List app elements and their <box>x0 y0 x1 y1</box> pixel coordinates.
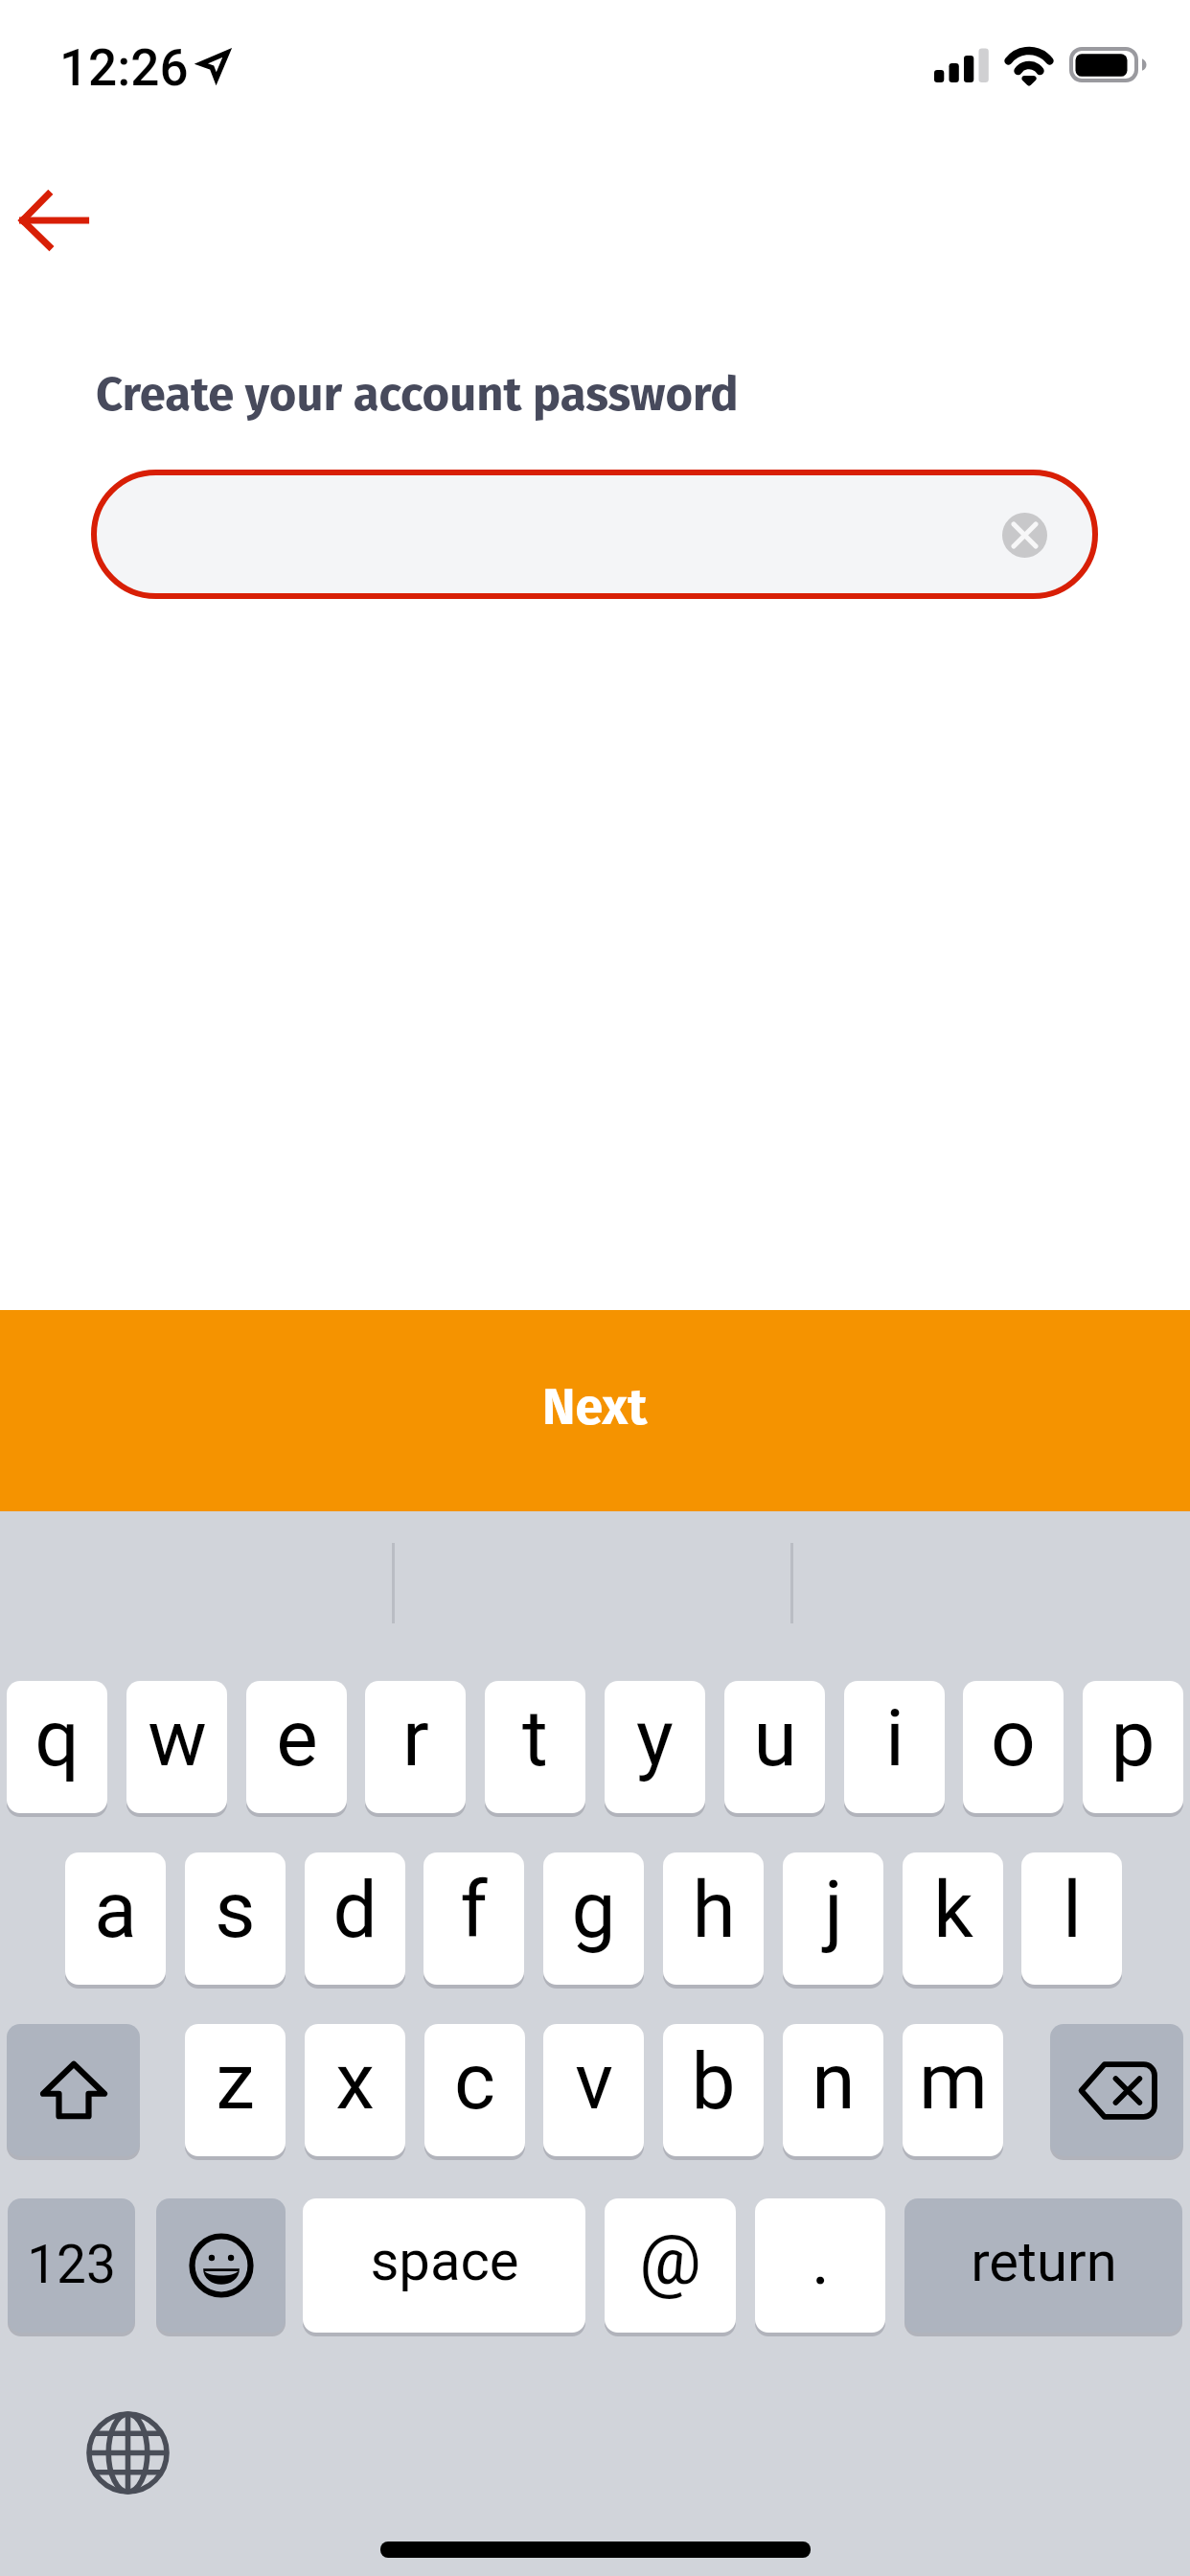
staticText: e <box>276 1692 318 1784</box>
staticText: a <box>94 1864 137 1956</box>
staticText: 123 <box>27 2234 116 2295</box>
staticText: v <box>575 2035 613 2127</box>
button[interactable]: y <box>605 1681 705 1813</box>
button[interactable]: l <box>1021 1852 1122 1985</box>
staticText: p <box>1110 1692 1156 1784</box>
button[interactable]: Back <box>10 172 105 268</box>
staticText: s <box>215 1864 256 1956</box>
staticText: d <box>332 1864 378 1956</box>
staticText: z <box>216 2035 255 2127</box>
button[interactable]: h <box>663 1852 764 1985</box>
button[interactable]: v <box>543 2024 644 2156</box>
button[interactable]: m <box>903 2024 1003 2156</box>
button[interactable]: k <box>903 1852 1003 1985</box>
button[interactable]: z <box>185 2024 286 2156</box>
staticText: l <box>1063 1864 1082 1956</box>
button[interactable]: q <box>7 1681 107 1813</box>
staticText: u <box>753 1692 797 1784</box>
staticText: r <box>402 1692 429 1784</box>
button[interactable] <box>91 470 1098 599</box>
button[interactable]: t <box>485 1681 585 1813</box>
button[interactable]: s <box>185 1852 286 1985</box>
staticText: Next <box>542 1377 648 1437</box>
button[interactable]: Shift <box>7 2024 140 2156</box>
button[interactable]: n <box>783 2024 883 2156</box>
button[interactable]: Clear text <box>1002 513 1047 558</box>
staticText: @ <box>639 2219 701 2300</box>
button[interactable]: return <box>904 2198 1182 2333</box>
staticText: b <box>691 2035 736 2127</box>
button[interactable]: Change keyboard <box>85 2410 171 2495</box>
staticText: n <box>812 2035 856 2127</box>
button[interactable]: . <box>755 2198 885 2333</box>
button[interactable]: Backspace <box>1050 2024 1183 2156</box>
button[interactable]: x <box>305 2024 405 2156</box>
staticText: t <box>522 1692 548 1784</box>
button[interactable]: space <box>303 2198 585 2333</box>
staticText: k <box>933 1864 973 1956</box>
staticText: f <box>460 1864 488 1956</box>
staticText: return <box>971 2229 1117 2294</box>
staticText: m <box>919 2035 988 2127</box>
button[interactable]: j <box>783 1852 883 1985</box>
button[interactable]: Next <box>0 1310 1190 1511</box>
staticText: i <box>885 1692 904 1784</box>
button[interactable]: a <box>65 1852 166 1985</box>
staticText: h <box>692 1864 736 1956</box>
button[interactable]: Emoji <box>156 2198 286 2333</box>
button[interactable]: c <box>424 2024 525 2156</box>
staticText: y <box>636 1692 674 1784</box>
button[interactable]: f <box>423 1852 524 1985</box>
staticText: g <box>571 1864 616 1956</box>
staticText: c <box>454 2035 495 2127</box>
button[interactable]: w <box>126 1681 227 1813</box>
button[interactable]: @ <box>605 2198 736 2333</box>
staticText: 12:26 <box>59 38 189 98</box>
staticText: space <box>370 2228 519 2293</box>
button[interactable]: u <box>724 1681 825 1813</box>
button[interactable]: 123 <box>8 2198 135 2333</box>
staticText: q <box>34 1692 80 1784</box>
button[interactable]: e <box>246 1681 347 1813</box>
staticText: j <box>824 1864 843 1956</box>
button[interactable]: p <box>1083 1681 1183 1813</box>
button[interactable]: r <box>365 1681 466 1813</box>
staticText: w <box>148 1692 207 1784</box>
staticText: o <box>991 1692 1036 1784</box>
staticText: . <box>812 2219 830 2300</box>
button[interactable]: d <box>305 1852 405 1985</box>
button[interactable]: i <box>844 1681 945 1813</box>
staticText: Create your account password <box>96 366 739 423</box>
staticText: x <box>335 2035 375 2127</box>
button[interactable]: g <box>543 1852 644 1985</box>
button[interactable]: o <box>963 1681 1064 1813</box>
button[interactable]: b <box>663 2024 764 2156</box>
